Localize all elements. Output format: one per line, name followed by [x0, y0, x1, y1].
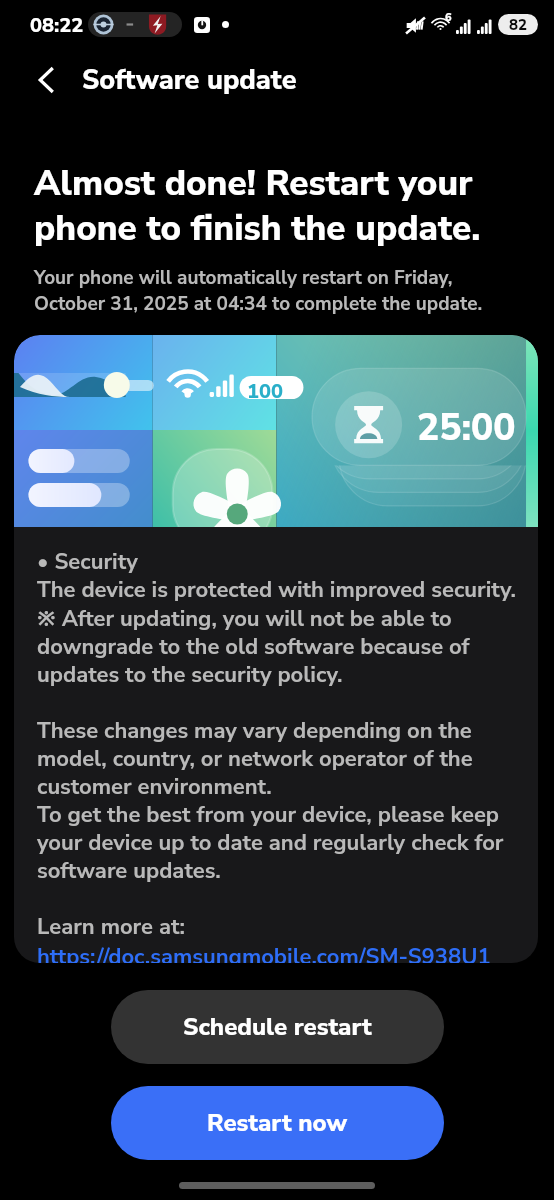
button[interactable]: Restart now	[111, 1086, 444, 1160]
staticText: Restart now	[207, 1107, 348, 1140]
staticText: Almost done! Restart your phone to finis…	[34, 160, 481, 253]
staticText: • Security The device is protected with …	[37, 547, 516, 942]
staticText: 82	[509, 15, 528, 35]
staticText: Your phone will automatically restart on…	[34, 265, 483, 317]
staticText: 100	[247, 378, 283, 405]
staticText: 25:00	[417, 403, 516, 453]
staticText: Schedule restart	[183, 1011, 372, 1044]
button[interactable]: Schedule restart	[111, 990, 444, 1064]
staticText: 08:22	[30, 12, 84, 39]
staticText: 6	[445, 10, 452, 25]
staticText: Software update	[82, 62, 297, 99]
staticText: https://doc.samsungmobile.com/SM-S938U1	[37, 942, 491, 963]
button[interactable]: Back	[26, 58, 70, 102]
